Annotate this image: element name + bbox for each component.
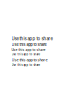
staticText: Use this app to share — [11, 42, 46, 47]
staticText: Use this app to share — [11, 57, 47, 62]
staticText: Use this app to share — [11, 36, 52, 41]
staticText: Use this app to share — [11, 48, 45, 52]
staticText: Use this app to share — [11, 63, 40, 67]
staticText: Use this app to share — [11, 53, 40, 56]
